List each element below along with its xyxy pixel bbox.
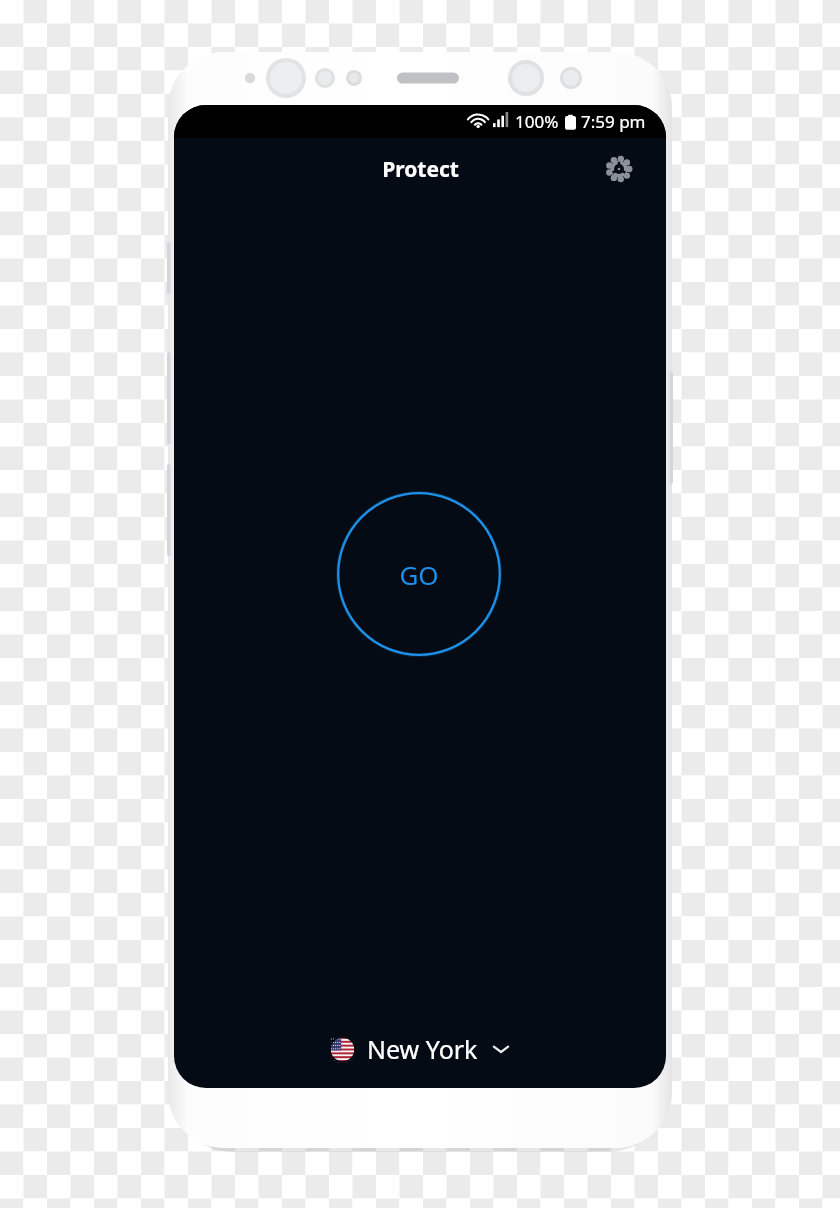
staticText: New York: [367, 1032, 478, 1066]
staticText: 7:59 pm: [581, 110, 646, 133]
staticText: Protect: [382, 155, 459, 184]
staticText: 100%: [515, 110, 559, 133]
staticText: GO: [399, 557, 439, 592]
button[interactable]: Settings: [602, 152, 636, 186]
button[interactable]: New York: [312, 1022, 528, 1076]
button[interactable]: GO: [336, 491, 502, 657]
